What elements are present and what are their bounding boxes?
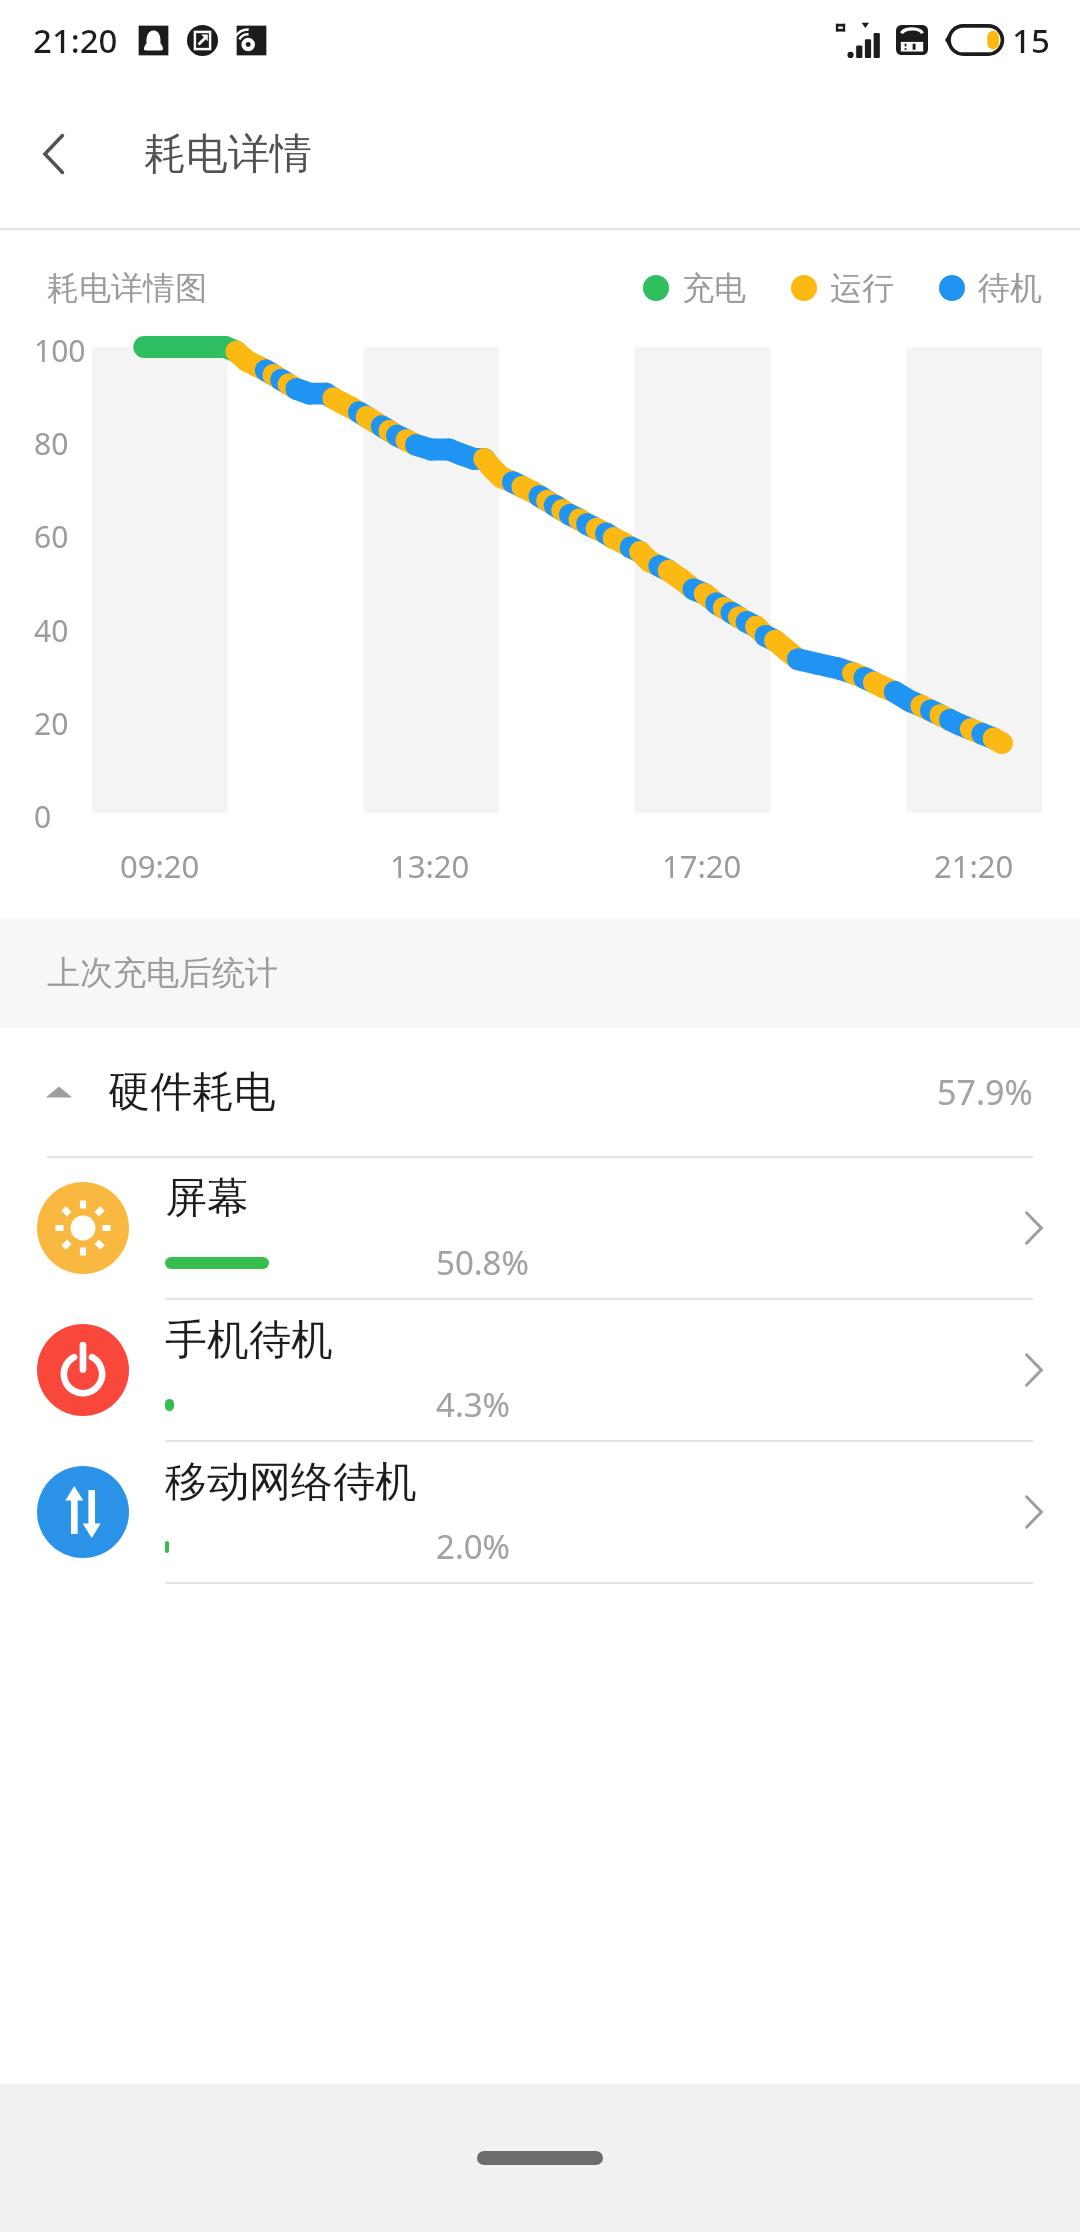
staticText: 100 [34,330,86,364]
staticText: 15 [1012,18,1050,63]
staticText: 硬件耗电 [108,1066,276,1119]
staticText: 上次充电后统计 [47,952,278,994]
staticText: 运行 [830,268,894,308]
staticText: 60 [34,516,69,550]
button[interactable]: 移动网络待机 [0,1442,1080,1582]
staticText: 21:20 [934,845,1014,887]
staticText: 移动网络待机 [165,1456,417,1509]
button[interactable]: 屏幕 [0,1158,1080,1298]
staticText: 耗电详情图 [47,268,207,308]
staticText: 13:20 [390,845,470,887]
staticText: 40 [34,610,69,644]
staticText: 屏幕 [165,1172,249,1225]
staticText: 手机待机 [165,1314,333,1367]
staticText: 耗电详情 [144,128,312,181]
staticText: 2.0% [436,1524,511,1569]
button[interactable]: Home [477,2151,603,2165]
staticText: 09:20 [120,845,200,887]
staticText: 0 [34,796,52,830]
staticText: 4.3% [436,1382,511,1427]
staticText: 待机 [978,268,1042,308]
staticText: 17:20 [662,845,742,887]
staticText: 57.9% [937,1069,1033,1115]
staticText: 20 [34,703,69,737]
button[interactable]: 手机待机 [0,1300,1080,1440]
staticText: 充电 [682,268,746,308]
staticText: 80 [34,423,69,457]
button[interactable]: Back [16,115,94,193]
staticText: 21:20 [33,18,118,63]
button[interactable]: 硬件耗电 [0,1028,1080,1156]
staticText: 50.8% [436,1240,529,1285]
